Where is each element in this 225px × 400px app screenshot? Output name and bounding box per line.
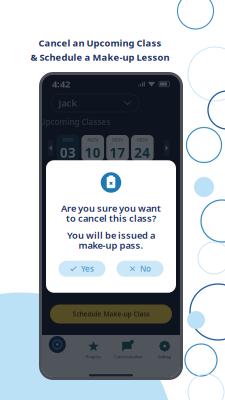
staticText: No [140, 263, 151, 274]
staticText: Schedule Make-up Class [72, 310, 149, 318]
staticText: Communication [114, 354, 142, 359]
button[interactable]: Schedule Make-up Class [50, 304, 172, 323]
button[interactable]: Communication [111, 339, 145, 361]
button[interactable]: Progress [76, 339, 110, 361]
button[interactable]: Yes [58, 261, 105, 277]
button[interactable]: NOV [57, 135, 79, 161]
button[interactable]: Home [46, 333, 68, 355]
staticText: 10 [85, 144, 101, 161]
staticText: make-up pass. [78, 239, 143, 251]
staticText: NOV [87, 136, 98, 143]
staticText: & Schedule a Make-up Lesson [30, 51, 169, 63]
staticText: Yes [81, 263, 94, 274]
staticText: 17 [109, 144, 125, 161]
staticText: Upcoming Classes [39, 117, 110, 127]
staticText: NOV [62, 136, 73, 143]
button[interactable]: NOV [81, 135, 104, 161]
staticText: You will be issued a [67, 229, 155, 241]
button[interactable]: Settings [148, 339, 182, 361]
staticText: NOV [112, 136, 123, 143]
staticText: Progress [85, 354, 101, 359]
staticText: Settings [158, 354, 171, 359]
staticText: to cancel this class? [66, 212, 156, 224]
staticText: NOV [137, 136, 148, 143]
button[interactable]: No [116, 261, 163, 277]
staticText: Are you sure you want [61, 202, 161, 214]
button[interactable]: Previous weeks [48, 140, 53, 156]
button[interactable]: NOV [131, 135, 154, 161]
button[interactable]: Jack [51, 94, 139, 112]
button[interactable]: Next weeks [164, 140, 169, 156]
staticText: 03 [60, 144, 76, 161]
button[interactable]: NOV [106, 135, 129, 161]
staticText: Cancel an Upcoming Class [38, 37, 161, 49]
staticText: 24 [134, 144, 150, 161]
staticText: 4:42 [52, 78, 70, 90]
staticText: Jack [58, 97, 76, 109]
